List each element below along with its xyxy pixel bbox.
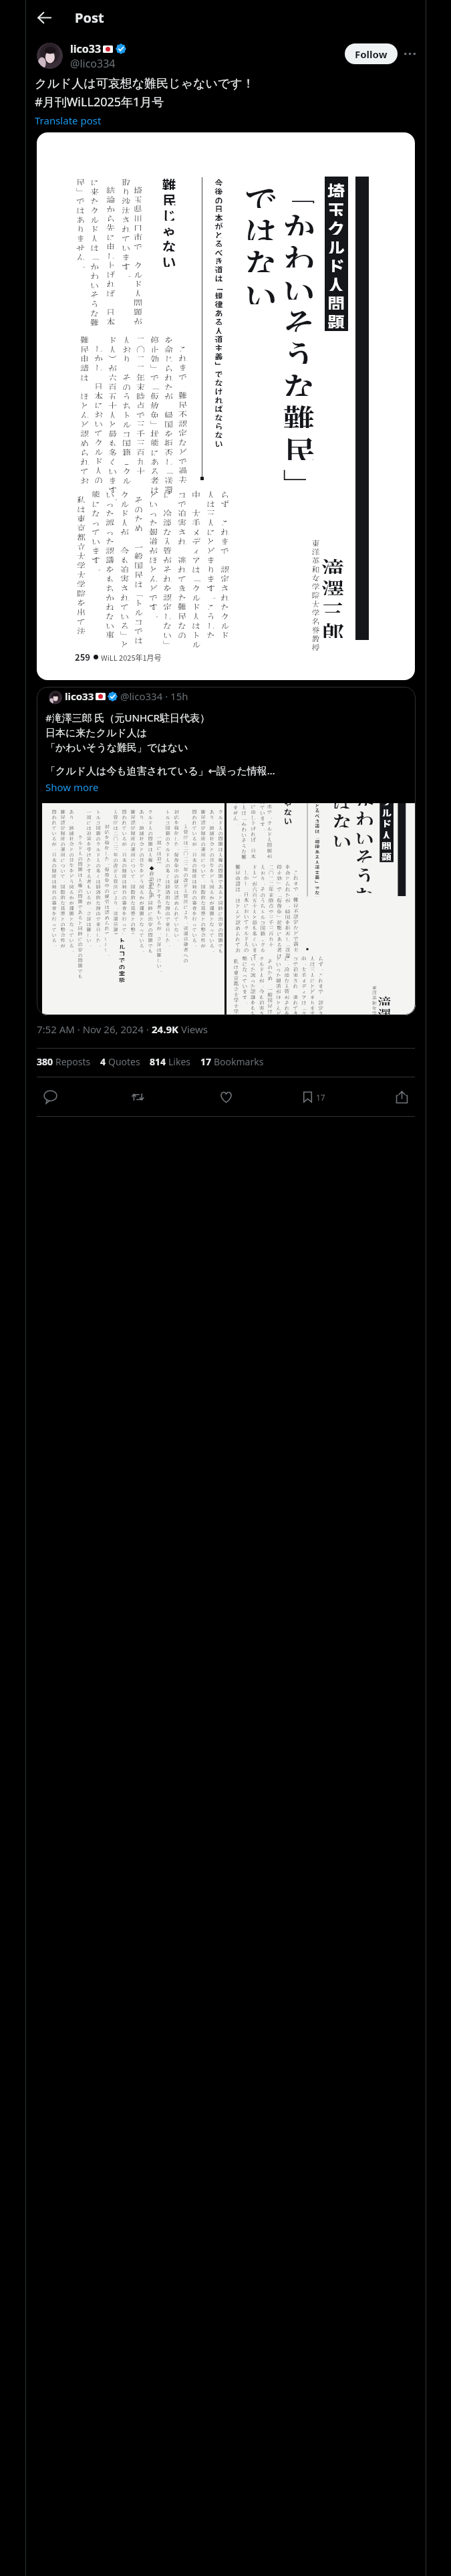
staticText: 三 [315, 595, 351, 617]
staticText: に [148, 446, 162, 455]
button[interactable]: More options [398, 42, 421, 65]
staticText: と [67, 916, 76, 921]
button[interactable]: Reply [39, 1085, 61, 1108]
staticText: い [242, 913, 250, 919]
button[interactable]: Show more [45, 780, 99, 794]
staticText: な [172, 926, 180, 932]
button[interactable]: 4 [100, 1055, 140, 1068]
staticText: 還 [283, 952, 292, 958]
staticText: ま [250, 947, 259, 952]
staticText: デ [300, 983, 308, 988]
staticText: ル [164, 846, 172, 851]
staticText: る [50, 937, 58, 942]
button[interactable]: Profile photo [37, 687, 416, 1015]
staticText: 末 [267, 891, 275, 897]
staticText: 今 [118, 544, 132, 554]
staticText: り [120, 352, 134, 362]
staticText: ﹂ [275, 880, 283, 886]
staticText: 二 [134, 362, 148, 371]
staticText: 独 [190, 883, 198, 889]
staticText: は [216, 846, 224, 851]
staticText: 日 [249, 847, 258, 853]
staticText: そ [120, 371, 134, 381]
staticText: 上 [249, 820, 258, 825]
staticText: @lico334 · 15h [120, 689, 188, 703]
staticText: 整 [129, 926, 137, 932]
staticText: 認 [59, 819, 67, 825]
staticText: 道 [212, 264, 225, 273]
staticText: し [283, 936, 292, 941]
button[interactable]: Profile photo [37, 43, 63, 69]
staticText: 主 [212, 342, 225, 351]
button[interactable]: Like [214, 1085, 237, 1108]
staticText: あ [275, 936, 283, 941]
staticText: こ [292, 869, 300, 874]
staticText: 否 [162, 446, 176, 455]
staticText: 三 [112, 846, 120, 851]
staticText: ク [242, 924, 250, 930]
staticText: が [190, 841, 198, 846]
staticText: 共 [208, 857, 216, 862]
button[interactable]: 17 [200, 1055, 264, 1068]
staticText: 後 [212, 186, 225, 195]
staticText: の [164, 835, 172, 841]
staticText: 図 [208, 883, 216, 889]
staticText: ま [258, 815, 267, 820]
staticText: ゃ [281, 803, 295, 806]
staticText: ず [317, 960, 325, 966]
staticText: の [94, 862, 102, 867]
staticText: を [74, 597, 88, 606]
staticText: 問 [216, 835, 224, 841]
staticText: 定 [59, 825, 67, 830]
staticText: ﹁ [88, 251, 102, 260]
staticText: 本 [120, 857, 128, 862]
staticText: も [155, 909, 163, 914]
button[interactable]: 380 [37, 1055, 91, 1068]
staticText: で [313, 884, 321, 889]
button[interactable]: Image [37, 132, 415, 680]
button[interactable]: Back [31, 4, 57, 31]
staticText: 。 [108, 859, 110, 865]
staticText: は [88, 241, 102, 251]
staticText: ト [94, 809, 102, 814]
staticText: 部 [85, 814, 93, 819]
staticText: ル [94, 846, 102, 851]
staticText: 人 [76, 850, 84, 855]
button[interactable]: Share [390, 1085, 413, 1108]
staticText: で [146, 591, 160, 601]
button[interactable]: 814 [150, 1055, 191, 1068]
staticText: る [67, 889, 76, 894]
staticText: り [204, 563, 218, 572]
staticText: ま [73, 232, 88, 241]
staticText: Views [178, 1023, 208, 1036]
staticText: 仮 [275, 897, 283, 902]
button[interactable]: Translate post [35, 114, 102, 127]
staticText: 請 [78, 362, 92, 371]
staticText: 題 [208, 910, 216, 916]
staticText: 題 [322, 310, 350, 328]
button[interactable]: Follow [345, 43, 398, 64]
staticText: は [78, 371, 92, 381]
staticText: 般 [266, 991, 274, 997]
staticText: 性 [59, 937, 67, 942]
staticText: 運 [199, 846, 207, 851]
staticText: 、 [289, 901, 291, 907]
staticText: ド [164, 851, 172, 857]
staticText: ク [88, 204, 102, 213]
staticText: つ [199, 862, 207, 867]
button[interactable]: Profile photo [49, 691, 62, 704]
button[interactable]: Repost [126, 1085, 149, 1108]
staticText: 準 [59, 910, 67, 916]
staticText: そ [266, 958, 274, 964]
staticText: な [59, 899, 67, 905]
staticText: の [59, 841, 67, 846]
button[interactable]: Bookmark [302, 1091, 325, 1103]
staticText: 一 [85, 809, 93, 814]
staticText: が [131, 315, 145, 324]
staticText: の [120, 894, 128, 899]
staticText: ル [216, 814, 224, 819]
staticText: 問 [216, 932, 224, 937]
